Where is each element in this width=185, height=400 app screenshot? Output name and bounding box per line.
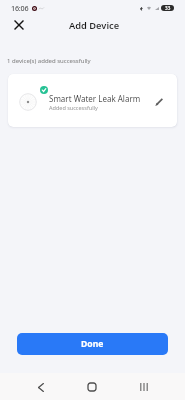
button[interactable]: Smart Water Leak Alarm <box>8 74 177 127</box>
button[interactable]: Close <box>8 14 29 35</box>
staticText: Done <box>81 338 104 350</box>
staticText: Add Device <box>69 19 120 32</box>
button[interactable]: Back <box>31 378 50 397</box>
staticText: 33 <box>165 5 171 11</box>
button[interactable]: Done <box>17 333 168 355</box>
staticText: Added successfully <box>49 104 98 111</box>
button[interactable]: Recent apps <box>134 377 153 396</box>
staticText: Smart Water Leak Alarm <box>49 93 141 104</box>
staticText: 1 device(s) added successfully <box>7 57 91 65</box>
button[interactable]: Rename device <box>147 90 171 114</box>
button[interactable]: Home <box>82 377 101 396</box>
staticText: 16:06 <box>11 3 29 13</box>
